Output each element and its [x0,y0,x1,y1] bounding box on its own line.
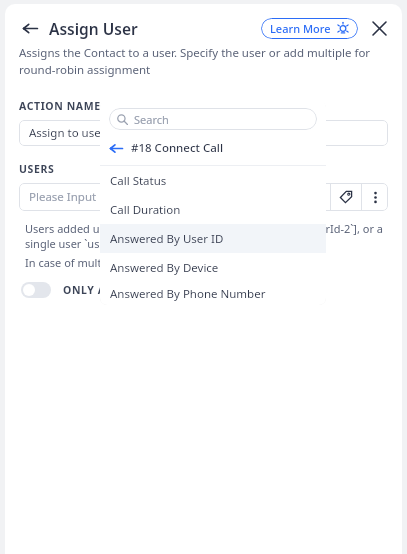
staticText: In case of multiple users, the mode will… [25,255,292,270]
staticText: Assigns the Contact to a user. Specify t… [19,45,386,77]
button[interactable]: Call Status [100,166,326,195]
button[interactable]: Please Input [19,189,330,205]
button[interactable]: Close [368,17,390,39]
button[interactable]: Assign to user [19,120,388,146]
button[interactable]: Answered By User ID [100,224,326,253]
staticText: Please Input [29,189,97,205]
staticText: Learn More [270,21,331,36]
staticText: Answered By Device [110,260,219,276]
staticText: #18 Connect Call [131,140,224,156]
button[interactable]: Answered By Device [100,253,326,282]
button[interactable]: ONLY APPLY TO [21,282,152,298]
button[interactable]: More options [362,183,388,211]
staticText: Call Status [110,173,167,189]
staticText: USERS [19,162,55,176]
staticText: Call Duration [110,202,181,218]
staticText: Users added using the API accept an arra… [25,221,388,251]
button[interactable]: Back [19,17,41,39]
staticText: Answered By User ID [110,231,224,247]
staticText: Answered By Phone Number [110,286,266,302]
button[interactable]: Tag [331,183,361,211]
staticText: Assign to user [29,125,106,141]
staticText: Search [134,112,169,127]
button[interactable]: Call Duration [100,195,326,224]
staticText: ACTION NAME [19,99,101,113]
button[interactable]: #18 Connect Call [100,137,326,159]
staticText: ONLY APPLY TO [63,283,152,297]
button[interactable]: Search [109,108,317,130]
button[interactable]: Answered By Phone Number [100,282,326,305]
button[interactable]: Learn More [261,18,358,39]
staticText: Assign User [49,18,138,39]
